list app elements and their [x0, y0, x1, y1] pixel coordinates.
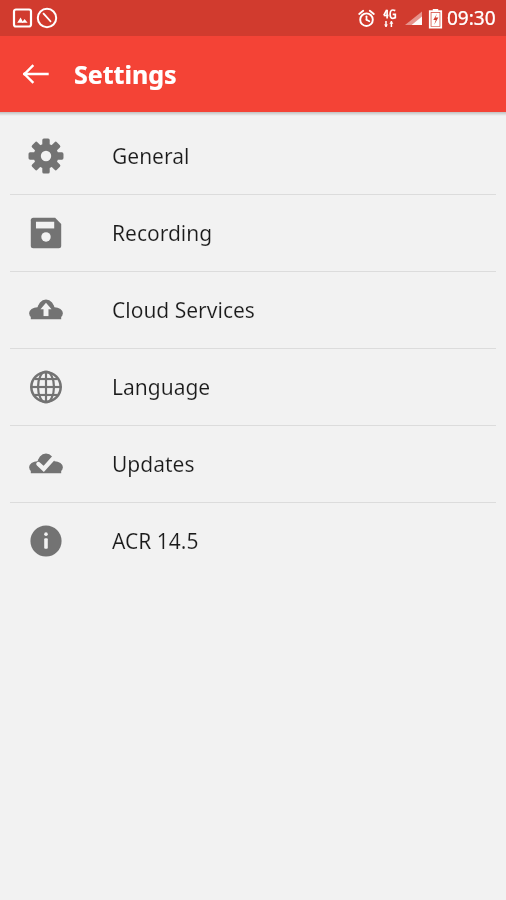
staticText: ACR 14.5	[112, 527, 199, 556]
staticText: Recording	[112, 219, 213, 248]
staticText: 09:30	[447, 5, 496, 31]
staticText: General	[112, 142, 190, 171]
button[interactable]: Back	[10, 48, 62, 100]
staticText: Language	[112, 373, 211, 402]
staticText: Cloud Services	[112, 296, 255, 325]
button[interactable]: Recording	[0, 195, 506, 271]
staticText: Updates	[112, 450, 195, 479]
button[interactable]: Updates	[0, 426, 506, 502]
button[interactable]: General	[0, 118, 506, 194]
staticText: Settings	[74, 57, 177, 91]
button[interactable]: Cloud Services	[0, 272, 506, 348]
button[interactable]: Language	[0, 349, 506, 425]
button[interactable]: ACR 14.5	[0, 503, 506, 579]
